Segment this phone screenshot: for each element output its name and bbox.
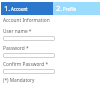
button[interactable] bbox=[3, 69, 55, 74]
staticText: Account Information bbox=[3, 17, 50, 24]
staticText: User name * bbox=[3, 28, 32, 35]
staticText: 1. bbox=[4, 3, 11, 13]
button[interactable]: 1. bbox=[1, 2, 53, 15]
staticText: Profile bbox=[63, 6, 77, 12]
staticText: (*) Mandatory bbox=[3, 77, 35, 84]
staticText: Confirm Password * bbox=[3, 61, 49, 68]
staticText: 2. bbox=[56, 3, 63, 13]
button[interactable] bbox=[3, 53, 55, 58]
button[interactable] bbox=[3, 36, 55, 41]
staticText: Password * bbox=[3, 45, 29, 52]
button[interactable]: 2. bbox=[53, 2, 100, 15]
staticText: Account bbox=[11, 6, 28, 12]
